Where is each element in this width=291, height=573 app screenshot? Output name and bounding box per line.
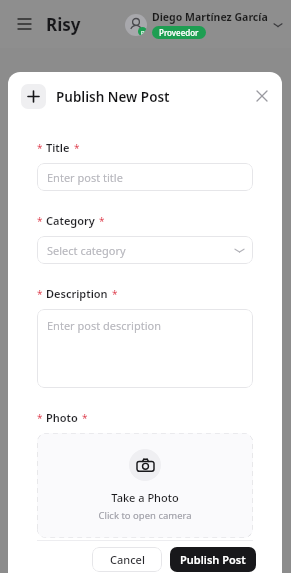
staticText: * [99,214,105,228]
staticText: * [37,287,43,301]
staticText: Enter post description [47,318,161,333]
staticText: * [37,214,43,228]
staticText: p [141,28,145,36]
staticText: Category [46,213,95,228]
staticText: Description [46,286,108,301]
staticText: Take a Photo [111,490,179,505]
button[interactable]: p [125,10,283,39]
staticText: Photo [46,410,78,425]
staticText: Publish New Post [56,88,170,106]
button[interactable]: Enter post description [37,309,253,388]
button[interactable]: Cancel [92,547,162,572]
staticText: Title [46,140,70,155]
staticText: Click to open camera [98,509,192,522]
staticText: Cancel [110,552,145,567]
staticText: * [112,287,118,301]
button[interactable]: Publish Post [170,547,256,572]
staticText: * [74,141,80,155]
staticText: Proveedor [159,27,199,38]
button[interactable]: Enter post title [37,163,253,191]
button[interactable]: Close [250,84,274,108]
button[interactable]: Take a Photo [37,433,253,538]
staticText: * [82,411,88,425]
staticText: Enter post title [47,170,123,185]
button[interactable]: Menu [14,14,34,34]
staticText: Publish Post [180,552,246,567]
button[interactable]: Select category [37,236,253,264]
staticText: * [37,141,43,155]
staticText: Select category [47,243,126,258]
staticText: Diego Martínez García [152,10,268,24]
staticText: * [37,411,43,425]
staticText: Risy [46,13,81,36]
